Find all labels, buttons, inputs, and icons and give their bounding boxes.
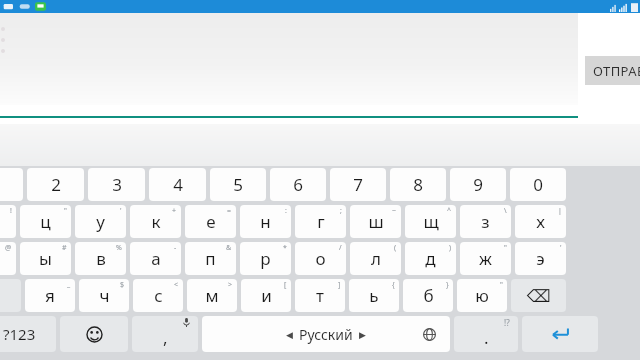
staticText: х	[536, 210, 545, 233]
staticText: '	[560, 243, 562, 253]
staticText: е	[206, 210, 216, 233]
staticText: ь	[369, 284, 379, 307]
button[interactable]: г	[295, 205, 346, 238]
button[interactable]: 8	[390, 168, 446, 201]
button[interactable]: э	[515, 242, 566, 275]
button[interactable]: ь	[349, 279, 399, 312]
button[interactable]: .	[454, 316, 518, 352]
button[interactable]: щ	[405, 205, 456, 238]
staticText: *	[283, 243, 287, 253]
staticText: 4	[173, 173, 183, 196]
button[interactable]: ⌫	[511, 279, 566, 312]
button[interactable]: р	[240, 242, 291, 275]
staticText: "	[500, 280, 503, 290]
button[interactable]: 0	[510, 168, 566, 201]
button[interactable]: о	[295, 242, 346, 275]
button[interactable]: 4	[149, 168, 206, 201]
staticText: @	[5, 243, 12, 253]
button[interactable]: 9	[450, 168, 506, 201]
staticText: :	[285, 206, 287, 216]
button[interactable]: х	[515, 205, 566, 238]
staticText: "	[64, 206, 67, 216]
button[interactable]: Enter	[522, 316, 598, 352]
staticText: ч	[99, 284, 110, 307]
staticText: б	[423, 284, 434, 307]
staticText: \	[504, 206, 507, 216]
button[interactable]: н	[240, 205, 291, 238]
button[interactable]: л	[350, 242, 401, 275]
button[interactable]: 3	[88, 168, 145, 201]
button[interactable]: и	[241, 279, 291, 312]
staticText: ц	[40, 210, 51, 233]
button[interactable]: з	[460, 205, 511, 238]
staticText: ш	[368, 210, 384, 233]
button[interactable]: м	[187, 279, 237, 312]
button[interactable]	[0, 13, 578, 124]
staticText: т	[316, 284, 324, 307]
staticText: ⌫	[526, 286, 551, 306]
button[interactable]: в	[75, 242, 126, 275]
button[interactable]: Comma, voice input	[132, 316, 198, 352]
staticText: 0	[533, 173, 543, 196]
staticText: %	[116, 243, 122, 253]
staticText: !	[10, 206, 12, 216]
button[interactable]: а	[130, 242, 181, 275]
staticText: $	[120, 280, 125, 290]
staticText: ▶	[359, 330, 366, 340]
button[interactable]: ы	[20, 242, 71, 275]
staticText: р	[260, 247, 271, 270]
staticText: }	[446, 280, 449, 290]
staticText: 3	[112, 173, 122, 196]
staticText: у	[96, 210, 105, 233]
button[interactable]: п	[185, 242, 236, 275]
button[interactable]: ч	[79, 279, 129, 312]
staticText: а	[151, 247, 161, 270]
button[interactable]: у	[75, 205, 126, 238]
button[interactable]: я	[25, 279, 75, 312]
button[interactable]: ц	[20, 205, 71, 238]
button[interactable]: ю	[457, 279, 507, 312]
button[interactable]: Emoji	[60, 316, 128, 352]
staticText: {	[392, 280, 395, 290]
button[interactable]: к	[130, 205, 181, 238]
button[interactable]: ◀	[202, 316, 450, 352]
button[interactable]: ж	[460, 242, 511, 275]
button[interactable]: ?123	[0, 316, 56, 352]
staticText: 6	[293, 173, 303, 196]
staticText: ;	[340, 206, 342, 216]
staticText: г	[317, 210, 325, 233]
button[interactable]: 5	[210, 168, 266, 201]
staticText: 5	[233, 173, 243, 196]
staticText: &	[226, 243, 232, 253]
button[interactable]: е	[185, 205, 236, 238]
staticText: [	[284, 280, 287, 290]
staticText: ]	[338, 280, 341, 290]
staticText: м	[205, 284, 219, 307]
button[interactable]: б	[403, 279, 453, 312]
staticText: з	[481, 210, 490, 233]
button[interactable]: 2	[27, 168, 84, 201]
button[interactable]: с	[133, 279, 183, 312]
button[interactable]: ш	[350, 205, 401, 238]
button[interactable]: 6	[270, 168, 326, 201]
staticText: ?123	[3, 324, 36, 344]
staticText: "	[504, 243, 507, 253]
button[interactable]: ф	[0, 242, 16, 275]
button[interactable]: д	[405, 242, 456, 275]
button[interactable]: ОТПРАВИТЬ	[585, 56, 640, 85]
staticText: <	[174, 280, 179, 290]
staticText: |	[558, 206, 562, 216]
staticText: н	[260, 210, 271, 233]
button[interactable]: 7	[330, 168, 386, 201]
staticText: ,	[163, 326, 168, 349]
staticText: ◀	[286, 330, 293, 340]
staticText: )	[449, 243, 452, 253]
button[interactable]: т	[295, 279, 345, 312]
staticText: 8	[413, 173, 423, 196]
staticText: '	[120, 206, 122, 216]
staticText: #	[62, 243, 67, 253]
button[interactable]: й	[0, 205, 16, 238]
